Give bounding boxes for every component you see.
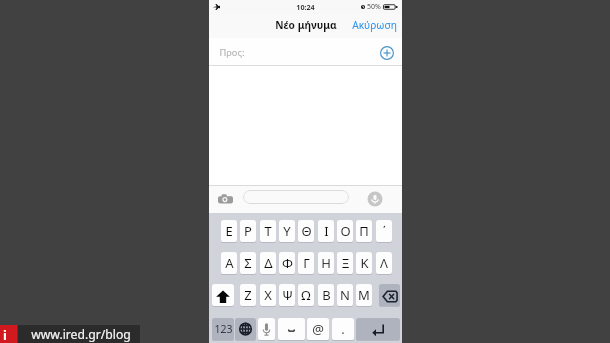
button[interactable]: Φ (279, 252, 295, 274)
button[interactable]: Ω (298, 284, 314, 306)
staticText: 10:24 (296, 2, 315, 12)
staticText: Μ (358, 286, 370, 304)
button[interactable]: Return (356, 318, 400, 340)
staticText: Λ (380, 254, 388, 272)
button[interactable]: Dictate (258, 318, 275, 340)
staticText: Τ (264, 222, 272, 240)
button[interactable]: @ (307, 318, 329, 340)
staticText: Ω (301, 286, 311, 304)
button[interactable]: Π (356, 220, 372, 242)
staticText: Νέο μήνυμα (275, 18, 337, 32)
button[interactable]: Λ (376, 252, 392, 274)
button[interactable]: Μ (356, 284, 372, 306)
button[interactable]: Σ (240, 252, 256, 274)
staticText: Θ (301, 222, 312, 240)
staticText: Ρ (244, 222, 252, 240)
staticText: Π (359, 222, 369, 240)
button[interactable]: Add contact (380, 46, 394, 60)
button[interactable] (243, 190, 349, 204)
staticText: www.ired.gr/blog (31, 326, 131, 343)
button[interactable]: Camera (218, 194, 233, 204)
button[interactable]: Ξ (337, 252, 353, 274)
staticText: Κ (360, 254, 369, 272)
staticText: Ζ (244, 286, 252, 304)
staticText: Υ (283, 222, 291, 240)
staticText: Σ (244, 254, 252, 272)
button[interactable]: Shift (212, 284, 234, 306)
staticText: Δ (264, 254, 273, 272)
button[interactable]: Ακύρωση (347, 14, 402, 36)
staticText: Προς: (219, 46, 245, 59)
staticText: Α (225, 254, 234, 272)
staticText: Β (322, 286, 331, 304)
staticText: Ε (225, 222, 233, 240)
button[interactable]: Δ (260, 252, 276, 274)
button[interactable]: Θ (298, 220, 314, 242)
staticText: 50% (367, 2, 381, 12)
button[interactable]: Κ (356, 252, 372, 274)
button[interactable]: Switch keyboard (235, 318, 256, 340)
button[interactable]: 123 (212, 318, 234, 340)
staticText: @ (312, 320, 324, 338)
button[interactable]: Ν (337, 284, 353, 306)
button[interactable]: Record audio (367, 191, 383, 207)
button[interactable]: Ζ (240, 284, 256, 306)
staticText: i (3, 326, 7, 343)
button[interactable]: Υ (279, 220, 295, 242)
staticText: Γ (303, 254, 310, 272)
button[interactable]: Ρ (240, 220, 256, 242)
button[interactable]: Α (221, 252, 237, 274)
staticText: Φ (282, 254, 293, 272)
button[interactable]: Γ (298, 252, 314, 274)
staticText: Ακύρωση (352, 18, 397, 32)
staticText: ΄ (383, 223, 386, 239)
button[interactable]: Ι (318, 220, 334, 242)
staticText: Η (321, 254, 331, 272)
staticText: . (341, 320, 345, 338)
button[interactable]: Η (318, 252, 334, 274)
button[interactable]: Ε (221, 220, 237, 242)
button[interactable]: Χ (260, 284, 276, 306)
button[interactable]: Backspace (379, 284, 400, 306)
button[interactable]: . (332, 318, 354, 340)
staticText: Ο (340, 222, 351, 240)
staticText: 123 (214, 322, 233, 336)
staticText: Χ (264, 286, 272, 304)
button[interactable]: Ο (337, 220, 353, 242)
button[interactable]: Space (278, 318, 305, 340)
staticText: Ι (324, 222, 329, 240)
button[interactable]: Β (318, 284, 334, 306)
button[interactable]: Τ (260, 220, 276, 242)
staticText: Ξ (341, 254, 350, 272)
button[interactable]: ΄ (376, 220, 392, 242)
button[interactable]: Ψ (279, 284, 295, 306)
staticText: Ν (340, 286, 350, 304)
staticText: Ψ (282, 286, 293, 304)
